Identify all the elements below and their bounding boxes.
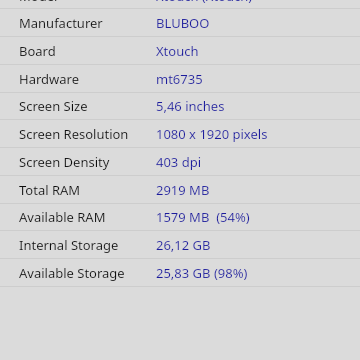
staticText: 1080 x 1920 pixels [156, 125, 268, 143]
staticText: Total RAM [19, 181, 81, 199]
staticText: Internal Storage [19, 236, 119, 254]
staticText: Available RAM [19, 208, 106, 226]
button[interactable]: Screen Resolution [0, 120, 360, 147]
staticText: Screen Resolution [19, 125, 129, 143]
button[interactable]: Screen Size [0, 93, 360, 119]
staticText: Screen Density [19, 153, 110, 171]
staticText: mt6735 [156, 70, 203, 88]
staticText: 1579 MB (54%) [156, 208, 250, 226]
staticText: Hardware [19, 70, 79, 88]
button[interactable]: Internal Storage [0, 231, 360, 258]
button[interactable]: Available Storage [0, 259, 360, 286]
staticText: 2919 MB [156, 181, 210, 199]
staticText: Screen Size [19, 97, 88, 115]
staticText: Xtouch (Xtouch) [156, 0, 253, 5]
staticText: 26,12 GB [156, 236, 211, 254]
staticText: Manufacturer [19, 14, 103, 32]
staticText: Xtouch [156, 42, 199, 60]
staticText: 25,83 GB (98%) [156, 264, 248, 282]
button[interactable]: Manufacturer [0, 9, 360, 36]
staticText: Available Storage [19, 264, 125, 282]
button[interactable]: Hardware [0, 65, 360, 92]
staticText: Model [19, 0, 58, 5]
staticText: 5,46 inches [156, 97, 225, 115]
button[interactable]: Available RAM [0, 204, 360, 230]
staticText: Board [19, 42, 56, 60]
staticText: BLUBOO [156, 14, 210, 32]
button[interactable]: Total RAM [0, 176, 360, 203]
staticText: 403 dpi [156, 153, 202, 171]
button[interactable]: Board [0, 37, 360, 64]
button[interactable]: Model [0, 0, 360, 8]
button[interactable]: Screen Density [0, 148, 360, 175]
